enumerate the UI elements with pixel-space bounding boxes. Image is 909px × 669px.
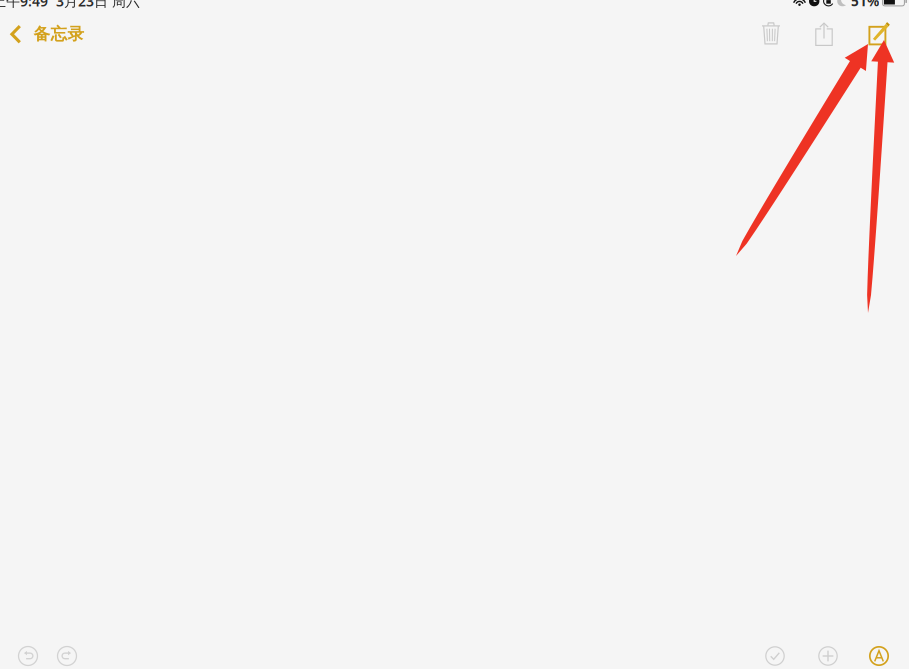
button[interactable]: Share [802,14,846,52]
button[interactable]: Undo [9,637,47,669]
staticText: 备忘录 [33,24,84,44]
staticText: 51% [851,0,879,10]
button[interactable]: Delete [749,14,793,52]
button[interactable]: Compose [857,14,901,52]
button[interactable]: 备忘录 [0,16,94,52]
button[interactable]: Checklist [755,637,795,669]
button[interactable]: Redo [48,637,86,669]
button[interactable]: Add attachment [808,637,848,669]
staticText: 上午9:49 3月23日 周六 [0,0,140,11]
button[interactable]: Text format [859,637,899,669]
